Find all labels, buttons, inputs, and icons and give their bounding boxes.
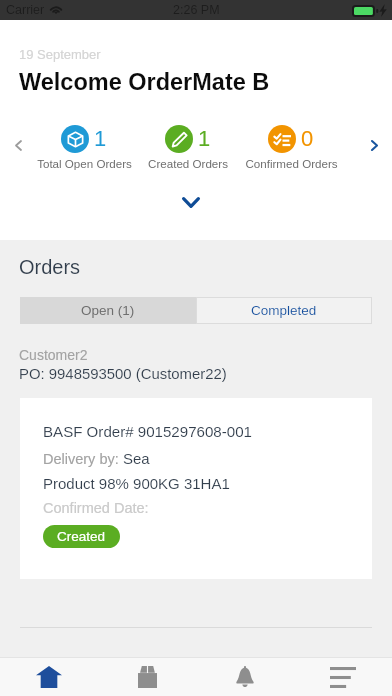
staticText: BASF Order# 9015297608-001	[43, 423, 252, 440]
staticText: Customer2	[19, 347, 88, 363]
button[interactable]: Completed	[196, 297, 372, 324]
staticText: 2:26 PM	[173, 3, 220, 17]
button[interactable]: Open (1)	[20, 297, 196, 324]
button[interactable]: 0	[239, 125, 343, 170]
staticText: Created	[57, 529, 106, 544]
button[interactable]: Home	[0, 658, 98, 696]
staticText: 1	[198, 126, 211, 151]
staticText: Confirmed Orders	[245, 157, 338, 170]
staticText: 19 September	[19, 47, 101, 62]
staticText: Orders	[19, 256, 81, 278]
staticText: Sea	[123, 450, 150, 467]
button[interactable]: 1	[32, 125, 136, 170]
staticText: Completed	[251, 303, 317, 318]
button[interactable]: Notifications	[196, 658, 294, 696]
button[interactable]: Orders	[98, 658, 196, 696]
button[interactable]: Next	[360, 133, 388, 159]
button[interactable]: More	[294, 658, 392, 696]
staticText: Created Orders	[148, 157, 228, 170]
staticText: Delivery by:	[43, 451, 123, 467]
staticText: Product 98% 900KG 31HA1	[43, 475, 230, 492]
staticText: Open (1)	[81, 303, 135, 318]
button[interactable]: Created	[43, 525, 120, 548]
staticText: Confirmed Date:	[43, 500, 149, 516]
button[interactable]: Previous	[4, 133, 32, 159]
button[interactable]: 1	[136, 125, 240, 170]
staticText: 1	[94, 126, 107, 151]
staticText: Carrier	[6, 3, 45, 17]
staticText: 0	[301, 126, 314, 151]
staticText: PO: 9948593500 (Customer22)	[19, 366, 227, 383]
staticText: Total Open Orders	[37, 157, 132, 170]
button[interactable]: Expand summary	[176, 190, 205, 214]
staticText: Welcome OrderMate B	[19, 69, 270, 95]
button[interactable]: BASF Order# 9015297608-001	[20, 398, 372, 579]
